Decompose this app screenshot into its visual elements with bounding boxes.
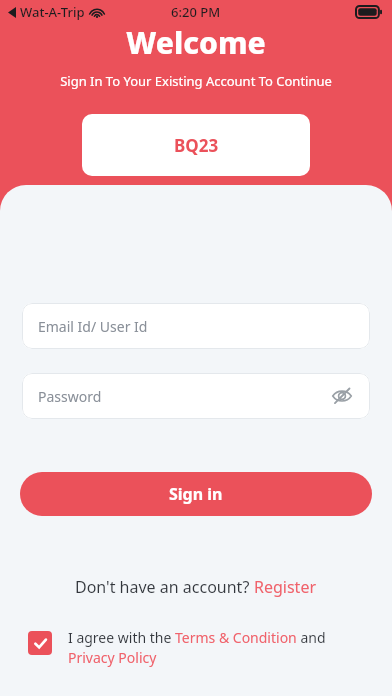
staticText: I agree with the Terms & Condition and P… [68, 628, 372, 668]
button[interactable]: Show password [326, 380, 358, 412]
button[interactable]: BQ23 [82, 114, 310, 176]
staticText: Email Id/ User Id [38, 317, 148, 336]
staticText: 6:20 PM [171, 3, 221, 21]
staticText: BQ23 [174, 134, 219, 157]
staticText: Register [254, 576, 317, 598]
staticText: Sign in [169, 483, 223, 505]
button[interactable]: Password [22, 373, 370, 419]
other: I agree checkbox [28, 631, 52, 655]
staticText: Sign In To Your Existing Account To Cont… [60, 72, 332, 90]
button[interactable]: I agree checkbox [28, 628, 372, 668]
staticText: Password [38, 387, 102, 406]
staticText: Don't have an account? [75, 576, 254, 598]
staticText: Wat-A-Trip [20, 3, 85, 21]
button[interactable]: Don't have an account? [67, 572, 325, 602]
staticText: Welcome [126, 22, 266, 63]
button[interactable]: Email Id/ User Id [22, 303, 370, 349]
button[interactable]: Sign in [20, 472, 372, 516]
